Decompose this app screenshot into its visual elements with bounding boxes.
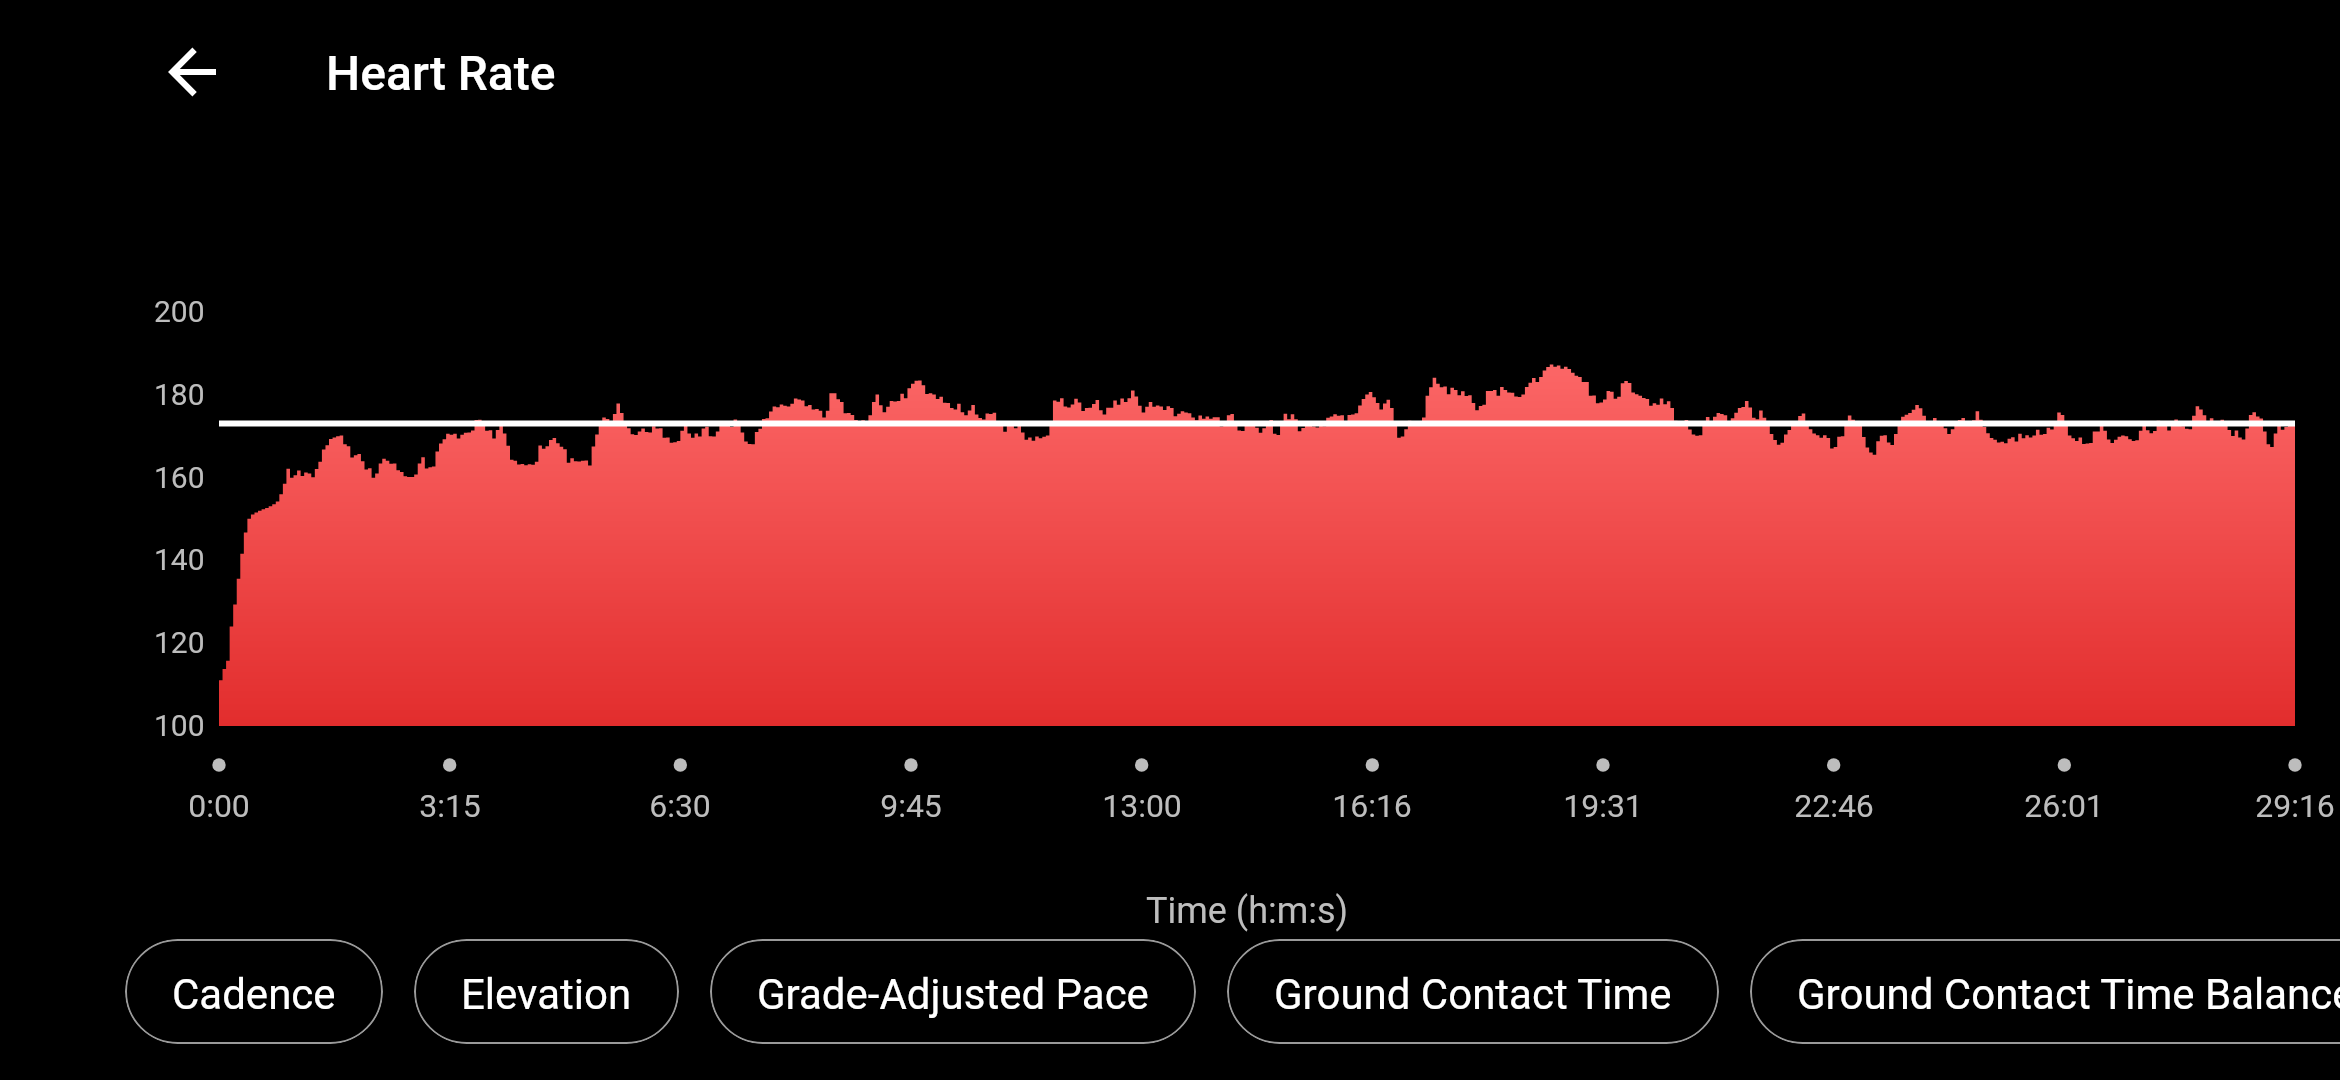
button[interactable]: Ground Contact Time	[1227, 939, 1719, 1044]
staticText: 160	[154, 460, 205, 495]
button[interactable]: Ground Contact Time Balance	[1750, 939, 2340, 1044]
staticText: 100	[154, 708, 205, 743]
staticText: 16:16	[1332, 787, 1412, 825]
button[interactable]: Back	[122, 0, 266, 144]
staticText: 200	[154, 294, 205, 329]
staticText: Elevation	[461, 970, 632, 1019]
staticText: Cadence	[172, 970, 336, 1019]
button[interactable]: Cadence	[125, 939, 383, 1044]
staticText: Grade-Adjusted Pace	[757, 970, 1149, 1019]
staticText: Time (h:m:s)	[1146, 890, 1349, 932]
staticText: 180	[154, 377, 205, 412]
staticText: 6:30	[649, 787, 711, 825]
staticText: Ground Contact Time Balance	[1797, 970, 2340, 1019]
button[interactable]: Elevation	[414, 939, 679, 1044]
staticText: 0:00	[188, 787, 250, 825]
staticText: 29:16	[2255, 787, 2335, 825]
staticText: 140	[154, 542, 205, 577]
staticText: Ground Contact Time	[1274, 970, 1672, 1019]
staticText: 9:45	[880, 787, 942, 825]
staticText: 13:00	[1102, 787, 1182, 825]
staticText: 3:15	[419, 787, 481, 825]
staticText: 22:46	[1794, 787, 1874, 825]
staticText: Heart Rate	[326, 45, 556, 101]
button[interactable]: Grade-Adjusted Pace	[710, 939, 1196, 1044]
staticText: 19:31	[1563, 787, 1643, 825]
staticText: 26:01	[2024, 787, 2104, 825]
staticText: 120	[154, 625, 205, 660]
